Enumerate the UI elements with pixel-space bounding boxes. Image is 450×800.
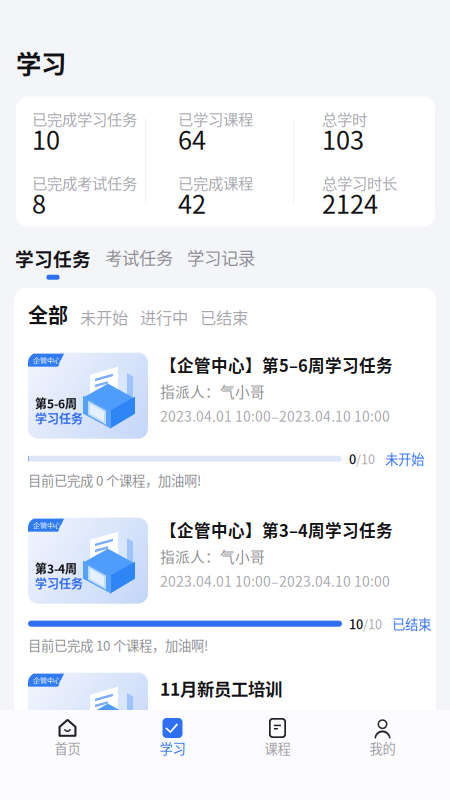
staticText: 未开始: [80, 305, 128, 329]
staticText: 2023.04.01 10:00–2023.04.10 10:00: [160, 570, 390, 591]
staticText: 0: [349, 449, 356, 468]
button[interactable]: 学习记录: [187, 245, 255, 278]
staticText: 首页: [54, 738, 80, 758]
staticText: 考试任务: [105, 245, 173, 270]
button[interactable]: 课程: [225, 703, 330, 800]
button[interactable]: 首页: [15, 703, 120, 800]
staticText: 【企管中心】第3–4周学习任务: [160, 518, 393, 542]
staticText: 2124: [322, 184, 378, 221]
button[interactable]: 企管中心: [14, 495, 447, 660]
staticText: 目前已完成 0 个课程，加油啊!: [28, 470, 201, 490]
staticText: 学习任务: [35, 574, 83, 592]
staticText: 2023.04.01 10:00–2023.04.10 10:00: [160, 405, 390, 426]
staticText: 已学习课程: [178, 108, 253, 130]
staticText: 未开始: [385, 449, 424, 468]
staticText: /10: [363, 614, 382, 633]
staticText: 11月: [35, 714, 61, 732]
button[interactable]: 已结束: [200, 305, 248, 329]
staticText: 10: [349, 614, 363, 633]
staticText: 10: [32, 120, 60, 157]
staticText: 进行中: [140, 305, 188, 329]
staticText: 新员工: [35, 729, 71, 747]
staticText: 学习记录: [187, 245, 255, 270]
staticText: 学习任务: [15, 245, 91, 272]
staticText: 42: [178, 184, 206, 221]
staticText: 已完成学习任务: [32, 108, 137, 130]
button[interactable]: 考试任务: [105, 245, 173, 278]
staticText: 64: [178, 120, 206, 157]
staticText: 指派人：气小哥: [160, 380, 265, 402]
staticText: 全部: [28, 300, 68, 329]
staticText: 【企管中心】第5–6周学习任务: [160, 353, 393, 377]
staticText: 学习任务: [35, 409, 83, 427]
staticText: 我的: [369, 738, 395, 758]
button[interactable]: 企管中心: [14, 330, 440, 495]
staticText: 已结束: [200, 305, 248, 329]
staticText: 企管中心: [33, 520, 61, 530]
staticText: 企管中心: [33, 675, 61, 685]
button[interactable]: 进行中: [140, 305, 188, 329]
button[interactable]: 学习: [120, 703, 225, 800]
staticText: 已完成课程: [178, 172, 253, 194]
button[interactable]: 企管中心: [14, 660, 436, 759]
button[interactable]: 未开始: [80, 305, 128, 329]
staticText: 已完成考试任务: [32, 172, 137, 194]
staticText: 第5-6周: [35, 394, 77, 412]
button[interactable]: 我的: [330, 703, 435, 800]
staticText: 学习: [16, 44, 66, 81]
staticText: 学习: [159, 738, 185, 758]
staticText: 已结束: [392, 614, 431, 633]
staticText: 课程: [264, 738, 290, 758]
staticText: 目前已完成 10 个课程，加油啊!: [28, 635, 208, 655]
button[interactable]: 全部: [28, 300, 68, 329]
staticText: /10: [356, 449, 375, 468]
staticText: 第3-4周: [35, 559, 77, 577]
staticText: 103: [322, 120, 364, 157]
staticText: 总学时: [322, 108, 367, 130]
button[interactable]: 学习任务: [15, 245, 91, 280]
staticText: 11月新员工培训: [160, 676, 282, 701]
staticText: 企管中心: [33, 355, 61, 365]
staticText: 指派人：气小哥: [160, 545, 265, 567]
staticText: 总学习时长: [322, 172, 397, 194]
staticText: 8: [32, 184, 46, 221]
